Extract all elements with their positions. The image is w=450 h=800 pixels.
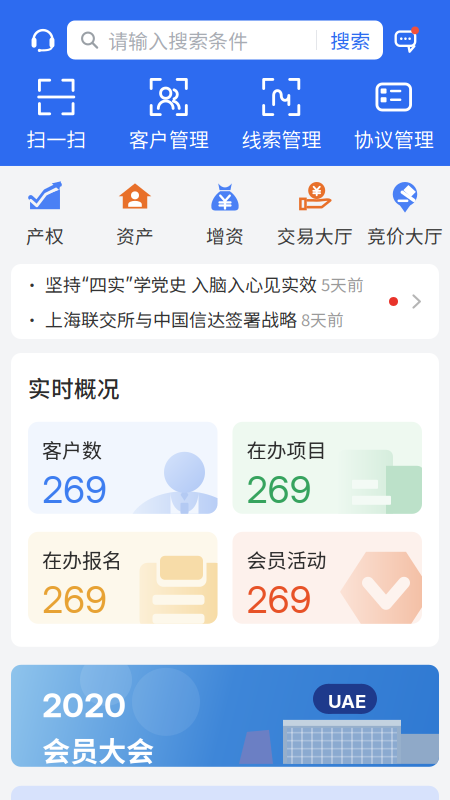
button[interactable]: 协议管理 <box>337 78 450 153</box>
staticText: 扫一扫 <box>26 124 86 153</box>
staticText: 实时概况 <box>28 371 120 404</box>
button[interactable]: 搜索 <box>317 20 383 59</box>
staticText: • <box>24 272 40 296</box>
staticText: “ <box>81 273 89 295</box>
staticText: 8天前 <box>297 307 344 331</box>
staticText: 请输入搜索条件 <box>108 25 248 54</box>
button[interactable]: 资产 <box>90 180 180 249</box>
staticText: 协议管理 <box>354 124 434 153</box>
button[interactable]: Customer service <box>19 20 67 60</box>
staticText: 在办报名 <box>42 545 122 574</box>
button[interactable]: 会员活动 <box>232 532 422 624</box>
staticText: ” <box>125 273 133 295</box>
staticText: 269 <box>42 467 107 512</box>
staticText: 交易大厅 <box>277 222 353 249</box>
button[interactable]: 增资 <box>180 180 270 249</box>
staticText: 增资 <box>206 222 244 249</box>
button[interactable]: 线索管理 <box>225 78 337 153</box>
button[interactable]: 扫一扫 <box>0 78 112 153</box>
staticText: 269 <box>246 577 311 622</box>
staticText: 产权 <box>26 222 64 249</box>
button[interactable]: 竞价大厅 <box>360 180 450 249</box>
staticText: 会员大会 <box>42 729 154 770</box>
staticText: 四实 <box>89 271 125 297</box>
staticText: 线索管理 <box>241 124 321 153</box>
button[interactable]: 交易大厅 <box>270 180 360 249</box>
staticText: 269 <box>246 467 311 512</box>
button[interactable]: Messages <box>383 20 431 60</box>
button[interactable]: 在办报名 <box>28 532 217 624</box>
staticText: 竞价大厅 <box>367 222 443 249</box>
staticText: 学党史 入脑入心见实效 <box>133 271 317 297</box>
staticText: 269 <box>42 577 107 622</box>
staticText: 客户管理 <box>129 124 209 153</box>
staticText: 搜索 <box>330 25 370 54</box>
staticText: 上海联交所与中国信达签署战略 <box>45 306 297 332</box>
staticText: 资产 <box>116 222 154 249</box>
button[interactable]: 客户数 <box>28 422 217 514</box>
staticText: 2020 <box>42 685 126 725</box>
staticText: 坚持 <box>45 271 81 297</box>
button[interactable]: 客户管理 <box>112 78 225 153</box>
staticText: 在办项目 <box>246 435 326 464</box>
staticText: • <box>24 307 40 331</box>
button[interactable]: • <box>11 264 439 339</box>
button[interactable]: 产权 <box>0 180 90 249</box>
staticText: UAE <box>328 690 366 712</box>
staticText: 5天前 <box>317 272 364 296</box>
staticText: 会员活动 <box>246 545 326 574</box>
button[interactable]: 在办项目 <box>232 422 422 514</box>
button[interactable]: UAE <box>11 665 439 767</box>
staticText: 客户数 <box>42 435 102 464</box>
